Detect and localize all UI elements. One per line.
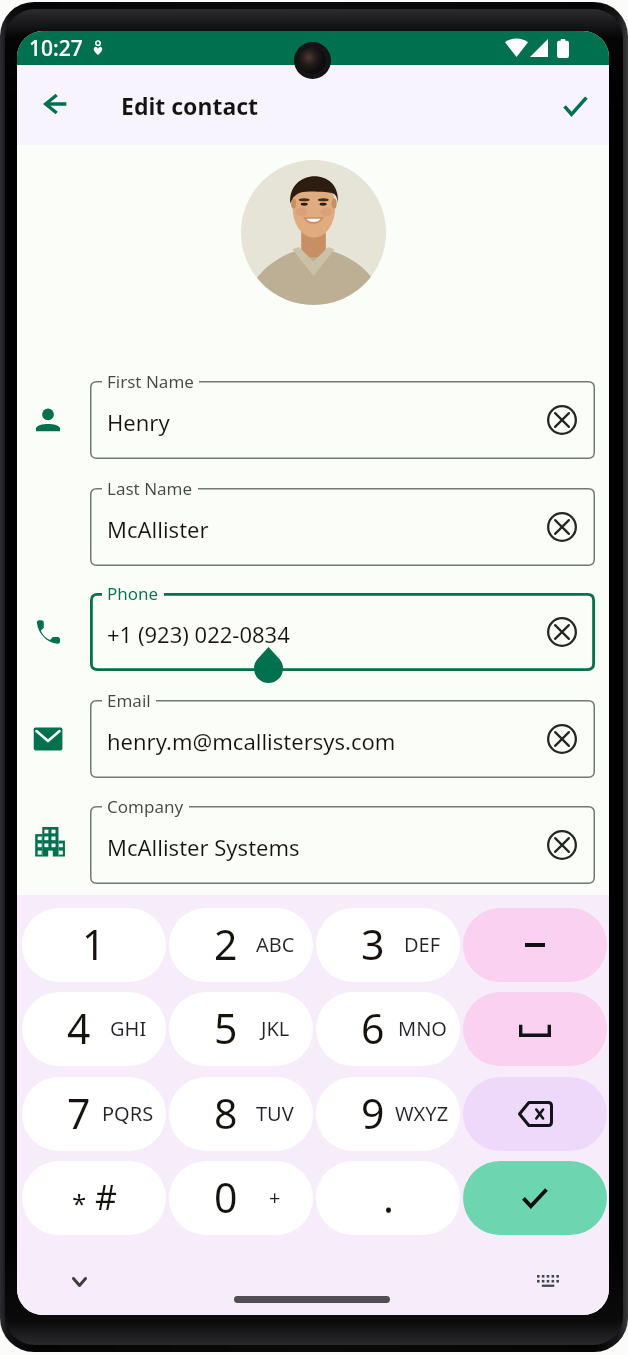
button[interactable]: 0 [169,1161,313,1235]
staticText: * [72,1185,87,1220]
button[interactable]: Hide keyboard [59,1262,99,1302]
staticText: Company [107,795,184,817]
staticText: 7 [67,1085,91,1141]
staticText: Email [107,689,151,711]
button[interactable]: Clear Email [543,720,581,758]
staticText: First Name [107,370,194,392]
button[interactable]: 7 [22,1077,166,1151]
button[interactable]: Email [90,700,595,778]
staticText: TUV [256,1100,294,1127]
staticText: ABC [256,931,295,958]
staticText: 6 [361,1000,385,1056]
staticText: DEF [404,931,441,958]
button[interactable]: Change keyboard [528,1261,568,1301]
staticText: . [383,1169,394,1225]
button[interactable]: 4 [22,992,166,1066]
button[interactable]: Dash [463,908,607,982]
button[interactable]: 3 [316,908,460,982]
staticText: 10:27 [29,34,83,63]
button[interactable]: Clear Last Name [543,508,581,546]
staticText: 8 [214,1085,238,1141]
button[interactable]: 2 [169,908,313,982]
staticText: WXYZ [395,1100,449,1127]
button[interactable]: Done [463,1161,607,1235]
staticText: MNO [398,1015,447,1042]
staticText: Edit contact [121,90,259,121]
button[interactable]: Space [463,992,607,1066]
button[interactable]: . [316,1161,460,1235]
button[interactable]: 8 [169,1077,313,1151]
staticText: Last Name [107,477,193,499]
button[interactable]: First Name [90,381,595,459]
staticText: henry.m@mcallistersys.com [107,726,396,756]
staticText: Henry [107,407,170,437]
staticText: 5 [214,1000,238,1056]
button[interactable]: Phone [90,593,595,671]
button[interactable]: Backspace [463,1077,607,1151]
staticText: 3 [361,916,385,972]
button[interactable]: Clear Phone [543,613,581,651]
button[interactable]: Last Name [90,488,595,566]
staticText: 2 [214,916,238,972]
staticText: +1 (923) 022-0834 [107,619,290,649]
button[interactable]: Save contact [549,80,601,132]
staticText: 0 [214,1169,238,1225]
button[interactable]: Company [90,806,595,884]
button[interactable]: 6 [316,992,460,1066]
staticText: GHI [110,1015,147,1042]
button[interactable]: * [22,1161,166,1235]
staticText: 4 [67,1000,91,1056]
button[interactable]: Back [30,78,82,130]
staticText: 9 [361,1085,385,1141]
staticText: JKL [261,1015,290,1042]
button[interactable]: Clear Company [543,826,581,864]
button[interactable]: 5 [169,992,313,1066]
button[interactable]: Contact photo [241,160,386,305]
staticText: + [269,1184,281,1211]
button[interactable]: 1 [22,908,166,982]
staticText: 1 [82,916,106,972]
staticText: McAllister Systems [107,832,300,862]
staticText: Phone [107,582,159,604]
button[interactable]: Clear First Name [543,401,581,439]
button[interactable]: 9 [316,1077,460,1151]
staticText: McAllister [107,514,209,544]
staticText: PQRS [102,1100,154,1127]
staticText: # [95,1174,117,1220]
